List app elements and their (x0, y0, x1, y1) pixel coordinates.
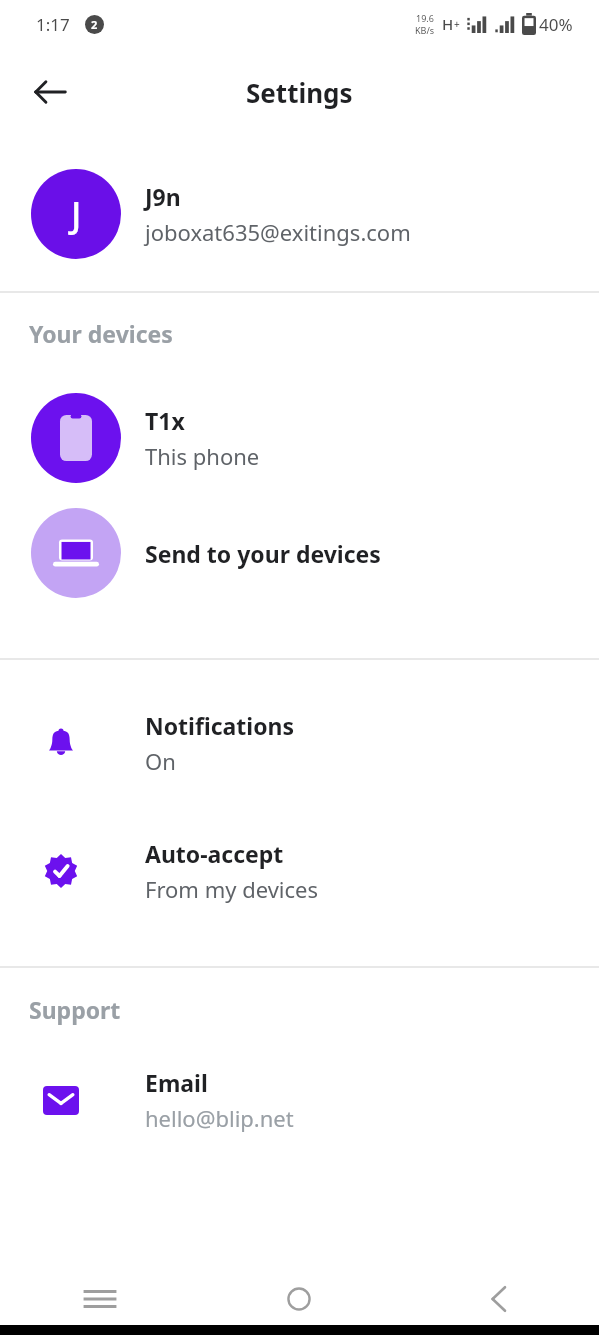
button[interactable]: Home (199, 1273, 399, 1325)
staticText: hello@blip.net (145, 1103, 294, 1133)
staticText: Notifications (145, 710, 295, 741)
button[interactable]: Back (399, 1273, 599, 1325)
staticText: From my devices (145, 874, 319, 904)
button[interactable]: Email (0, 1050, 599, 1150)
staticText: Auto-accept (145, 838, 284, 869)
staticText: + (454, 17, 460, 31)
staticText: KB/s (415, 24, 435, 36)
staticText: joboxat635@exitings.com (145, 217, 411, 247)
staticText: H (442, 14, 454, 34)
button[interactable]: J (0, 136, 599, 291)
staticText: On (145, 746, 176, 776)
staticText: Support (29, 994, 121, 1025)
button[interactable]: Recent apps (0, 1273, 199, 1325)
staticText: Settings (246, 75, 353, 110)
staticText: T1x (145, 405, 185, 436)
staticText: Your devices (29, 318, 173, 349)
button[interactable]: Notifications (0, 693, 599, 793)
staticText: 19.6 (416, 12, 434, 24)
button[interactable]: Auto-accept (0, 821, 599, 921)
staticText: Email (145, 1067, 208, 1098)
button[interactable]: Send to your devices (0, 503, 599, 603)
staticText: J9n (145, 181, 181, 212)
staticText: 1:17 (36, 13, 70, 36)
staticText: 2 (91, 17, 98, 32)
button[interactable]: T1x (0, 373, 599, 503)
staticText: This phone (145, 441, 260, 471)
staticText: J (71, 190, 82, 239)
button[interactable]: Back (22, 64, 78, 120)
staticText: 40% (539, 13, 573, 36)
staticText: Send to your devices (145, 538, 381, 569)
